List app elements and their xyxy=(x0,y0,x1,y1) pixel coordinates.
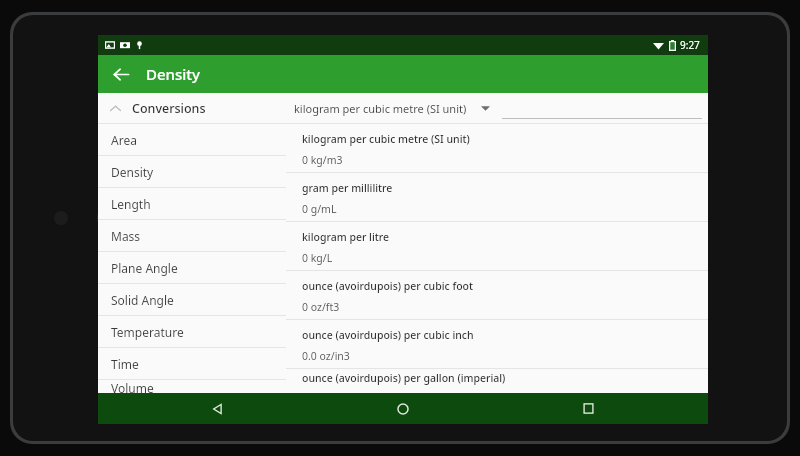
staticText: Volume xyxy=(111,380,154,393)
button[interactable]: kilogram per cubic metre (SI unit) xyxy=(286,124,708,172)
staticText: Area xyxy=(111,132,137,148)
staticText: Temperature xyxy=(111,324,184,340)
button[interactable]: Time xyxy=(98,348,286,379)
button[interactable]: Conversions xyxy=(98,93,286,123)
button[interactable]: Solid Angle xyxy=(98,284,286,315)
button[interactable]: Density xyxy=(98,156,286,187)
button[interactable]: Area xyxy=(98,124,286,155)
staticText: gram per millilitre xyxy=(302,181,393,195)
staticText: 9:27 xyxy=(680,38,700,52)
other: Select unit xyxy=(481,105,490,111)
button[interactable]: ounce (avoirdupois) per cubic foot xyxy=(286,271,708,319)
staticText: ounce (avoirdupois) per cubic inch xyxy=(302,328,474,342)
button[interactable]: Mass xyxy=(98,220,286,251)
staticText: ounce (avoirdupois) per cubic foot xyxy=(302,279,474,293)
button[interactable]: Plane Angle xyxy=(98,252,286,283)
button[interactable]: kilogram per litre xyxy=(286,222,708,270)
staticText: Density xyxy=(111,164,154,180)
button[interactable]: Temperature xyxy=(98,316,286,347)
staticText: 0 oz/ft3 xyxy=(302,300,340,314)
staticText: Plane Angle xyxy=(111,260,178,276)
button[interactable]: ounce (avoirdupois) per gallon (imperial… xyxy=(286,369,708,393)
button[interactable]: Volume xyxy=(98,380,286,393)
button[interactable]: gram per millilitre xyxy=(286,173,708,221)
button[interactable]: Navigate up xyxy=(106,59,136,89)
staticText: Time xyxy=(111,356,139,372)
staticText: 0 kg/m3 xyxy=(302,153,343,167)
staticText: Density xyxy=(146,64,200,84)
staticText: 0 kg/L xyxy=(302,251,333,265)
button[interactable]: ounce (avoirdupois) per cubic inch xyxy=(286,320,708,368)
staticText: Conversions xyxy=(132,100,206,117)
button[interactable]: Back xyxy=(198,393,238,424)
button[interactable]: kilogram per cubic metre (SI unit) xyxy=(286,93,498,123)
staticText: Mass xyxy=(111,228,141,244)
staticText: Solid Angle xyxy=(111,292,174,308)
button[interactable]: Recent apps xyxy=(568,393,608,424)
staticText: kilogram per cubic metre (SI unit) xyxy=(302,132,470,146)
staticText: Length xyxy=(111,196,151,212)
staticText: 0 g/mL xyxy=(302,202,337,216)
staticText: 0.0 oz/in3 xyxy=(302,349,350,363)
staticText: ounce (avoirdupois) per gallon (imperial… xyxy=(302,371,506,385)
button[interactable]: Home xyxy=(383,393,423,424)
button[interactable]: Length xyxy=(98,188,286,219)
staticText: kilogram per cubic metre (SI unit) xyxy=(294,101,467,116)
staticText: kilogram per litre xyxy=(302,230,390,244)
button[interactable] xyxy=(498,93,708,123)
